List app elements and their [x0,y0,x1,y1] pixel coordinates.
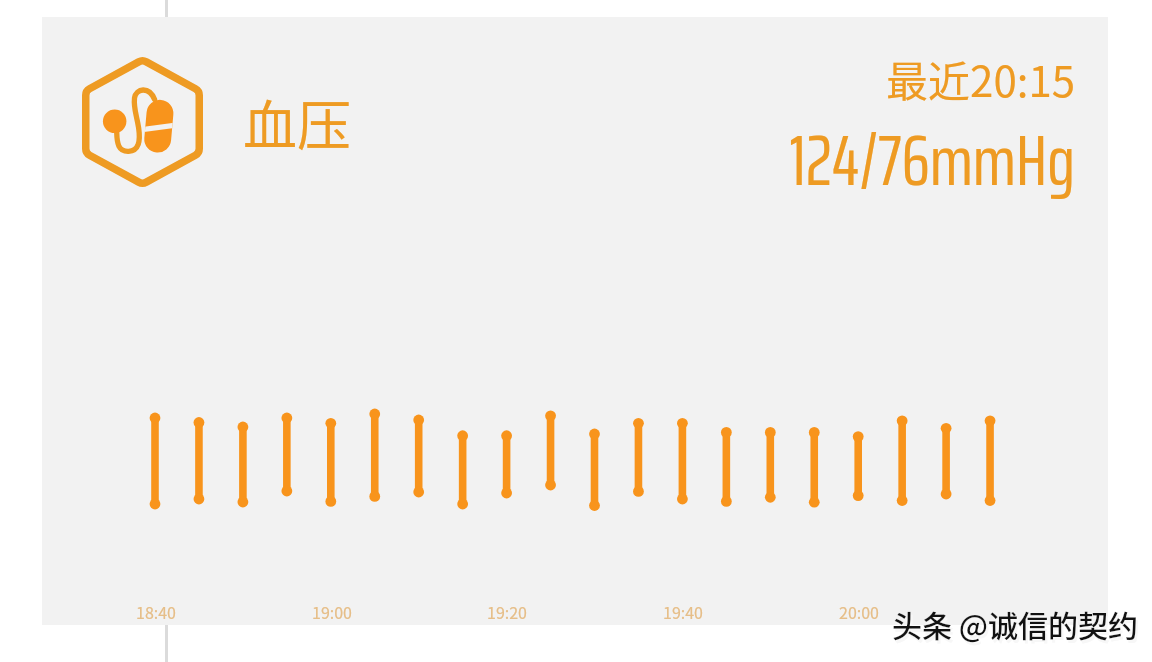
staticText: 19:00 [272,600,392,623]
staticText: 19:40 [623,600,743,623]
staticText: 血压 [243,83,351,161]
staticText: 20:00 [799,600,919,623]
staticText: 124/76mmHg [575,103,1075,216]
staticText: 头条 @诚信的契约 [894,605,1140,648]
staticText: 最近20:15 [575,48,1075,109]
staticText: 18:40 [96,600,216,623]
staticText: 头条 @诚信的契约 [892,602,1138,645]
staticText: 19:20 [447,600,567,623]
other: Blood pressure [82,56,203,188]
button[interactable]: Blood pressure [42,17,1108,625]
